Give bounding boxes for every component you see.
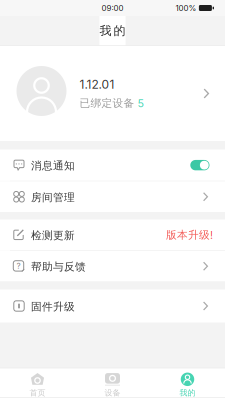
staticText: 100% (175, 3, 196, 13)
staticText: 1.12.01 (79, 77, 114, 91)
button[interactable]: 固件升级 (0, 289, 225, 322)
staticText: 帮助与反馈 (31, 260, 86, 273)
staticText: 检测更新 (31, 229, 75, 242)
button[interactable]: ? (0, 251, 225, 281)
button[interactable]: 检测更新 (0, 219, 225, 250)
staticText: 消息通知 (31, 159, 75, 172)
staticText: 设备 (104, 388, 120, 398)
staticText: 已绑定设备 (79, 96, 134, 110)
button[interactable]: 设备 (75, 373, 150, 398)
staticText: 我 (99, 23, 111, 38)
button[interactable]: 1.12.01 (0, 46, 225, 141)
staticText: 我的 (179, 388, 195, 398)
staticText: 房间管理 (31, 191, 75, 204)
staticText: 版本升级! (166, 228, 213, 241)
staticText: 固件升级 (31, 300, 75, 313)
staticText: 首页 (29, 388, 45, 398)
staticText: ? (16, 261, 20, 271)
button[interactable]: 我的 (150, 373, 225, 398)
staticText: 5 (137, 97, 143, 110)
staticText: 09:00 (101, 3, 123, 13)
button[interactable]: 首页 (0, 373, 75, 398)
button[interactable]: 消息通知 (0, 149, 225, 181)
button[interactable]: 房间管理 (0, 181, 225, 212)
button[interactable]: 消息通知开关 (190, 160, 209, 170)
staticText: 的 (114, 23, 126, 38)
